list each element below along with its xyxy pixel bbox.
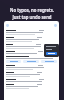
button[interactable]: Menu [6, 24, 9, 27]
button[interactable] [4, 64, 59, 71]
button[interactable] [46, 52, 57, 55]
button[interactable] [4, 83, 59, 90]
button[interactable] [4, 71, 59, 78]
button[interactable] [4, 43, 59, 50]
button[interactable]: Profile [54, 24, 57, 27]
staticText: No typos, no regrets. [10, 7, 54, 13]
button[interactable] [23, 60, 39, 63]
button[interactable] [4, 50, 59, 55]
button[interactable] [4, 29, 59, 36]
button[interactable] [4, 78, 59, 83]
staticText: Just tap undo send [12, 14, 52, 20]
button[interactable] [6, 60, 21, 63]
button[interactable] [41, 60, 57, 63]
button[interactable] [4, 36, 59, 43]
